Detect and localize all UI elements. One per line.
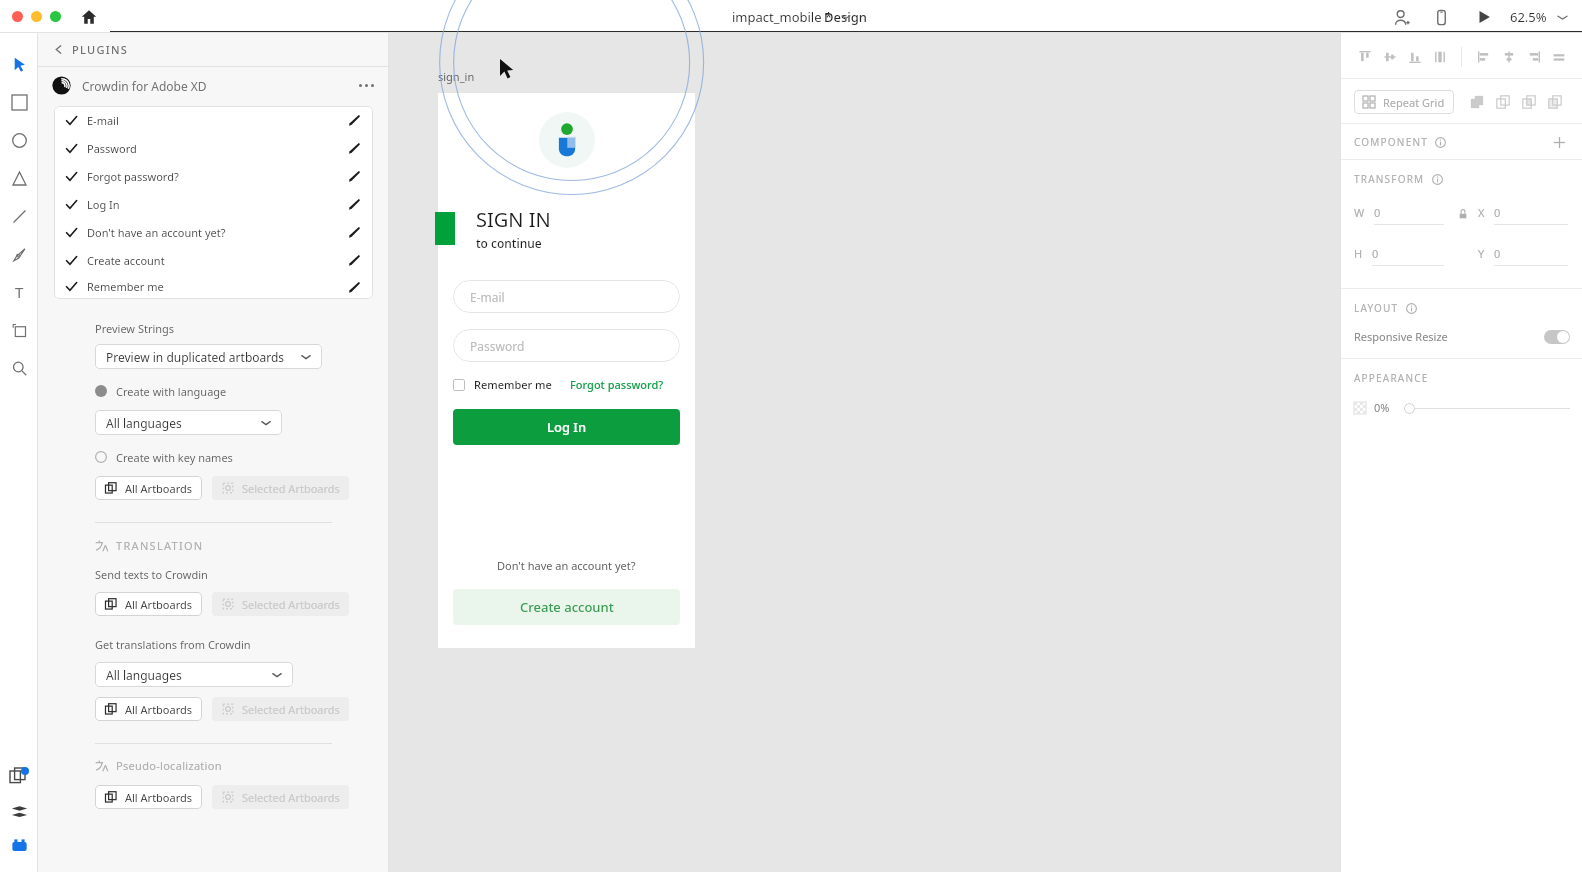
button[interactable]: 62.5% bbox=[1510, 8, 1568, 26]
button[interactable]: All Artboards bbox=[95, 592, 202, 616]
button[interactable]: Select bbox=[0, 45, 38, 83]
button[interactable]: All languages bbox=[95, 410, 282, 435]
button[interactable]: Align middle bbox=[1377, 44, 1402, 69]
button[interactable]: Play preview bbox=[1472, 5, 1496, 29]
button[interactable]: Password bbox=[453, 329, 680, 362]
staticText: Repeat Grid bbox=[1383, 95, 1445, 110]
button[interactable]: Boolean op 1 bbox=[1464, 89, 1490, 115]
button[interactable]: Don't have an account yet? bbox=[54, 218, 373, 246]
button[interactable]: Create with key names bbox=[95, 447, 233, 467]
staticText: Create account bbox=[520, 598, 614, 616]
button[interactable]: Remember me bbox=[453, 377, 552, 392]
button[interactable]: Responsive Resize bbox=[1354, 329, 1570, 344]
button[interactable]: Align right bbox=[1521, 44, 1546, 69]
button[interactable]: Align top bbox=[1352, 44, 1377, 69]
button[interactable]: Selected Artboards bbox=[212, 785, 349, 809]
button[interactable]: Rectangle bbox=[0, 83, 38, 121]
button[interactable]: PLUGINS bbox=[54, 42, 129, 57]
staticText: Crowdin for Adobe XD bbox=[82, 78, 207, 94]
button[interactable]: Text bbox=[0, 273, 38, 311]
staticText: Send texts to Crowdin bbox=[95, 567, 208, 582]
button[interactable]: Edit Create account bbox=[345, 251, 363, 269]
button[interactable]: Pen bbox=[0, 235, 38, 273]
button[interactable]: More options bbox=[353, 72, 379, 98]
staticText: All languages bbox=[106, 667, 182, 683]
button[interactable]: Distribute horizontal bbox=[1546, 44, 1571, 69]
staticText: Get translations from Crowdin bbox=[95, 637, 251, 652]
button[interactable]: Forgot password? bbox=[570, 377, 664, 392]
button[interactable]: Create with language bbox=[95, 381, 227, 401]
button[interactable]: Align center bbox=[1496, 44, 1521, 69]
button[interactable]: Polygon bbox=[0, 159, 38, 197]
button[interactable]: X bbox=[1478, 199, 1568, 225]
button[interactable]: W bbox=[1354, 199, 1444, 225]
button[interactable]: All languages bbox=[95, 662, 293, 687]
button[interactable]: Line bbox=[0, 197, 38, 235]
staticText: to continue bbox=[476, 235, 542, 251]
staticText: 0 bbox=[1372, 246, 1379, 261]
staticText: E-mail bbox=[87, 113, 119, 128]
button[interactable]: Device preview bbox=[1428, 4, 1454, 30]
button[interactable]: All Artboards bbox=[95, 476, 202, 500]
button[interactable]: E-mail bbox=[453, 280, 680, 313]
button[interactable]: Edit Forgot password? bbox=[345, 167, 363, 185]
button[interactable]: Edit E-mail bbox=[345, 111, 363, 129]
button[interactable]: Design bbox=[110, 0, 1582, 33]
staticText: 62.5% bbox=[1510, 8, 1547, 26]
button[interactable]: Selected Artboards bbox=[212, 592, 349, 616]
staticText: Y bbox=[1478, 246, 1485, 261]
button[interactable]: Opacity slider bbox=[1404, 403, 1415, 414]
button[interactable]: Password bbox=[54, 134, 373, 162]
button[interactable]: Create account bbox=[54, 246, 373, 274]
button[interactable]: Zoom bbox=[0, 349, 38, 387]
button[interactable]: Boolean op 3 bbox=[1516, 89, 1542, 115]
button[interactable]: Create account bbox=[453, 589, 680, 625]
button[interactable]: Boolean op 2 bbox=[1490, 89, 1516, 115]
staticText: Forgot password? bbox=[570, 377, 664, 392]
staticText: 0% bbox=[1374, 400, 1390, 415]
button[interactable]: Selected Artboards bbox=[212, 697, 349, 721]
staticText: APPEARANCE bbox=[1354, 371, 1429, 385]
button[interactable]: Preview in duplicated artboards bbox=[95, 344, 322, 369]
staticText: TRANSLATION bbox=[116, 538, 204, 553]
staticText: Create with language bbox=[116, 384, 227, 399]
button[interactable]: Selected Artboards bbox=[212, 476, 349, 500]
button[interactable]: Distribute vertical bbox=[1427, 44, 1452, 69]
button[interactable]: All Artboards bbox=[95, 785, 202, 809]
button[interactable]: Boolean op 4 bbox=[1542, 89, 1568, 115]
staticText: PLUGINS bbox=[72, 42, 129, 57]
button[interactable]: Assets bbox=[2, 760, 36, 794]
button[interactable]: Artboard bbox=[0, 311, 38, 349]
staticText: Password bbox=[470, 338, 525, 354]
button[interactable]: E-mail bbox=[54, 106, 373, 134]
button[interactable]: Invite bbox=[1388, 4, 1414, 30]
button[interactable]: Y bbox=[1478, 240, 1568, 266]
button[interactable]: H bbox=[1354, 240, 1444, 266]
button[interactable]: Log In bbox=[54, 190, 373, 218]
button[interactable]: Layers bbox=[2, 794, 36, 828]
staticText: T bbox=[15, 282, 24, 302]
button[interactable]: Forgot password? bbox=[54, 162, 373, 190]
staticText: All Artboards bbox=[125, 481, 193, 496]
staticText: All Artboards bbox=[125, 790, 193, 805]
button[interactable]: Add component bbox=[1548, 131, 1570, 153]
button[interactable]: Ellipse bbox=[0, 121, 38, 159]
button[interactable]: Edit Password bbox=[345, 139, 363, 157]
staticText: Selected Artboards bbox=[242, 481, 340, 496]
button[interactable]: Edit Log In bbox=[345, 195, 363, 213]
button[interactable]: Repeat Grid bbox=[1354, 90, 1454, 114]
button[interactable]: Align left bbox=[1471, 44, 1496, 69]
button[interactable]: Align bottom bbox=[1402, 44, 1427, 69]
button[interactable]: Edit Don't have an account yet? bbox=[345, 223, 363, 241]
staticText: COMPONENT bbox=[1354, 135, 1428, 149]
staticText: Responsive Resize bbox=[1354, 329, 1448, 344]
button[interactable]: Plugins bbox=[2, 828, 36, 862]
button[interactable]: Edit Remember me bbox=[345, 278, 363, 296]
staticText: Preview Strings bbox=[95, 321, 175, 336]
button[interactable]: Home bbox=[76, 4, 102, 30]
button[interactable]: Remember me bbox=[54, 274, 373, 299]
button[interactable]: All Artboards bbox=[95, 697, 202, 721]
staticText: All languages bbox=[106, 415, 182, 431]
staticText: Remember me bbox=[87, 279, 164, 294]
button[interactable]: Log In bbox=[453, 409, 680, 445]
